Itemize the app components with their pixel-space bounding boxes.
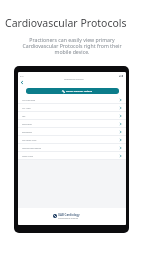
button[interactable]: STEMI Transfer Hotline bbox=[26, 88, 119, 94]
button[interactable]: Resuscitation bbox=[18, 128, 126, 136]
button[interactable]: Heart Failure bbox=[18, 120, 126, 128]
button[interactable]: ACS - Alerts bbox=[18, 104, 126, 112]
button[interactable]: Cardio / STEMI bbox=[18, 152, 126, 160]
staticText: AFib bbox=[22, 115, 26, 117]
staticText: Cardiovascular Institute bbox=[58, 217, 79, 219]
staticText: Resuscitation bbox=[22, 131, 32, 133]
button[interactable]: ACLS Cheat Sheet bbox=[18, 96, 126, 104]
staticText: Cardiovascular Protocols bbox=[5, 16, 127, 30]
staticText: Structural Heart Referrals bbox=[22, 147, 42, 149]
button[interactable]: Back bbox=[19, 80, 24, 85]
staticText: Cardio / STEMI bbox=[22, 155, 33, 157]
button[interactable]: Structural Heart Referrals bbox=[18, 144, 126, 152]
staticText: 9:41 bbox=[20, 75, 24, 77]
staticText: ACLS Cheat Sheet bbox=[22, 99, 36, 101]
staticText: STEMI Transfer Hotline bbox=[66, 90, 93, 93]
staticText: Post Cardiac Arrest bbox=[22, 139, 37, 141]
staticText: Heart Failure bbox=[22, 123, 32, 125]
staticText: ACS - Alerts bbox=[22, 107, 31, 109]
staticText: UAB Cardiology bbox=[58, 213, 80, 217]
button[interactable]: AFib bbox=[18, 112, 126, 120]
button[interactable]: Post Cardiac Arrest bbox=[18, 136, 126, 144]
staticText: Cardiovascular Protocols bbox=[64, 78, 84, 80]
staticText: Practioners can easily view primary Card… bbox=[0, 36, 144, 55]
